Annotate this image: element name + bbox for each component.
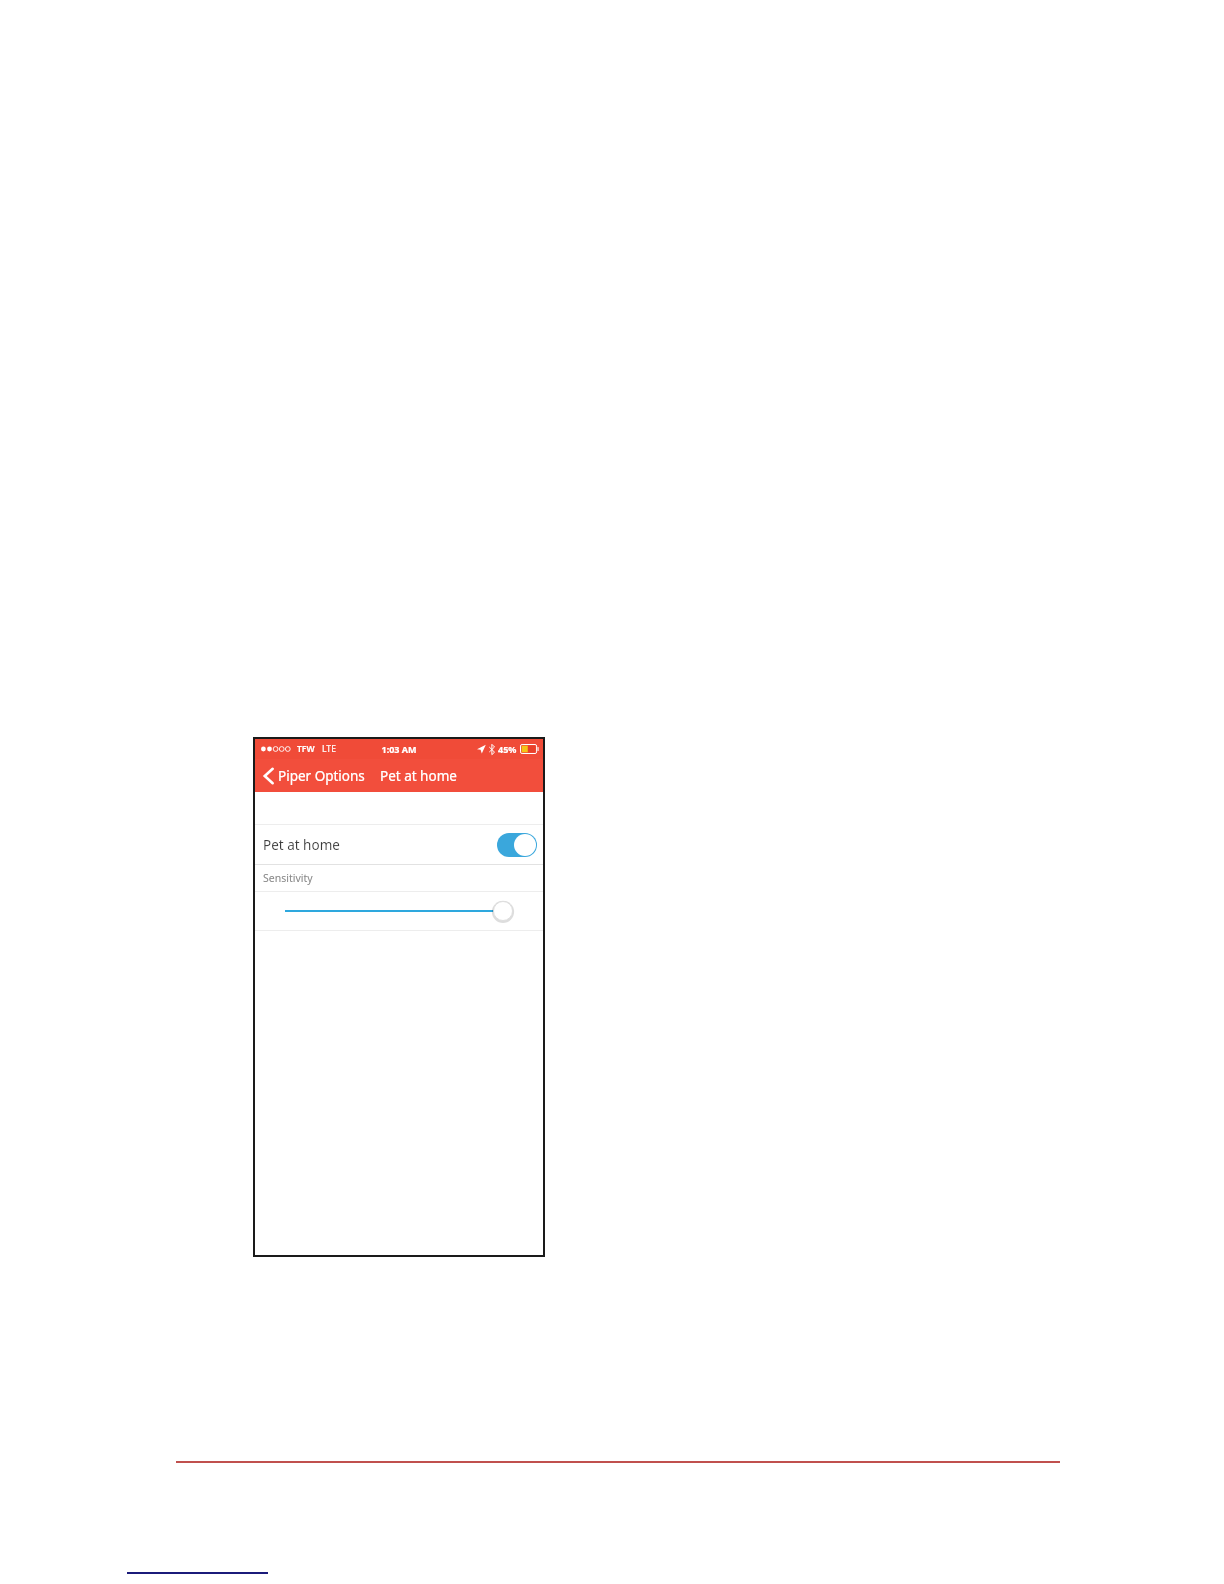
button[interactable]: Sensitivity slider (255, 892, 543, 930)
staticText: LTE (322, 743, 336, 755)
staticText: Sensitivity (263, 871, 313, 885)
other: Back (263, 767, 274, 785)
staticText: Pet at home (263, 836, 340, 854)
staticText: Piper Options (278, 767, 365, 785)
button[interactable]: Pet at home (255, 825, 543, 864)
staticText: Pet at home (380, 767, 457, 785)
staticText: TFW (297, 743, 315, 755)
staticText: 1:03 AM (381, 743, 417, 755)
button[interactable]: Back (255, 763, 369, 789)
staticText: 45% (498, 743, 517, 755)
button[interactable]: Pet at home toggle (497, 833, 537, 857)
